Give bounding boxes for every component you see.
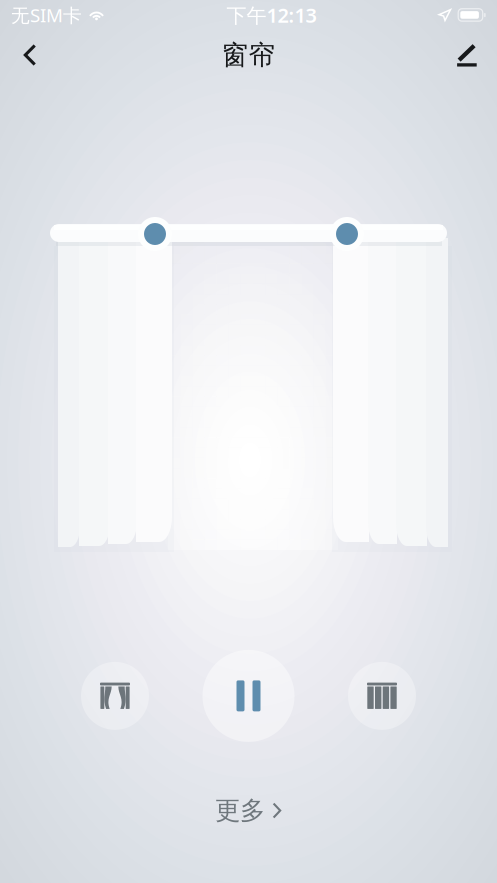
staticText: 无SIM卡 (11, 3, 82, 27)
button[interactable]: Back (7, 32, 53, 78)
staticText: 窗帘 (221, 39, 275, 71)
button[interactable]: Pause (202, 650, 294, 742)
staticText: 下午12:13 (227, 2, 317, 28)
staticText: 更多 (215, 795, 265, 826)
button[interactable]: Open curtain (81, 662, 149, 730)
button[interactable]: Close curtain (348, 662, 416, 730)
button[interactable]: 更多 (195, 786, 302, 835)
button[interactable]: Edit (444, 32, 490, 78)
